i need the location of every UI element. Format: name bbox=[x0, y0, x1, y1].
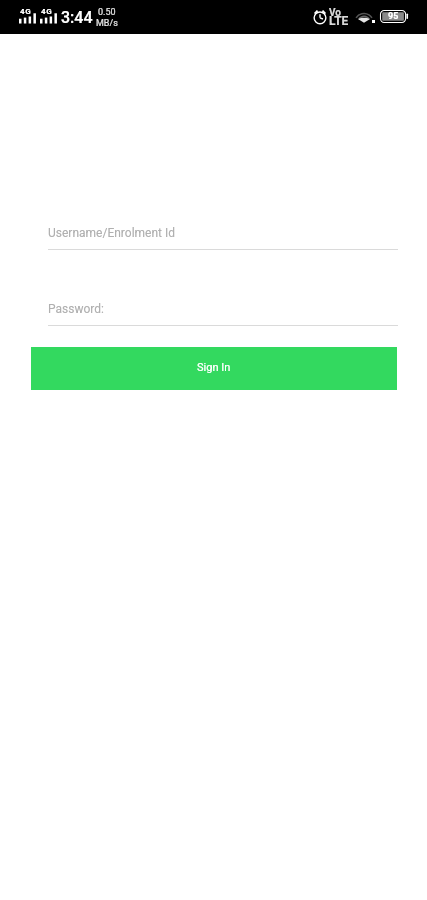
staticText: 3:44 bbox=[61, 8, 93, 27]
staticText: Sign In bbox=[197, 361, 231, 374]
staticText: 95 bbox=[388, 11, 399, 22]
other: Alarm bbox=[313, 10, 327, 24]
other: VoLTE bbox=[329, 8, 352, 25]
staticText: MB/s bbox=[96, 18, 118, 29]
staticText: 4G bbox=[41, 7, 53, 16]
staticText: Vo bbox=[329, 7, 341, 19]
button[interactable]: Username/Enrolment Id bbox=[48, 223, 398, 250]
staticText: 0.50 bbox=[98, 7, 116, 18]
button[interactable]: Sign In bbox=[31, 347, 397, 390]
staticText: LTE bbox=[329, 14, 349, 28]
other: Battery 95 percent bbox=[380, 10, 409, 23]
staticText: 4G bbox=[20, 7, 32, 16]
other: 4G signal bbox=[19, 8, 36, 24]
button[interactable]: Password: bbox=[48, 299, 398, 326]
other: Wi-Fi bbox=[355, 10, 376, 24]
staticText: Username/Enrolment Id bbox=[48, 226, 176, 240]
other: 4G signal bbox=[40, 8, 57, 24]
staticText: Password: bbox=[48, 302, 104, 316]
